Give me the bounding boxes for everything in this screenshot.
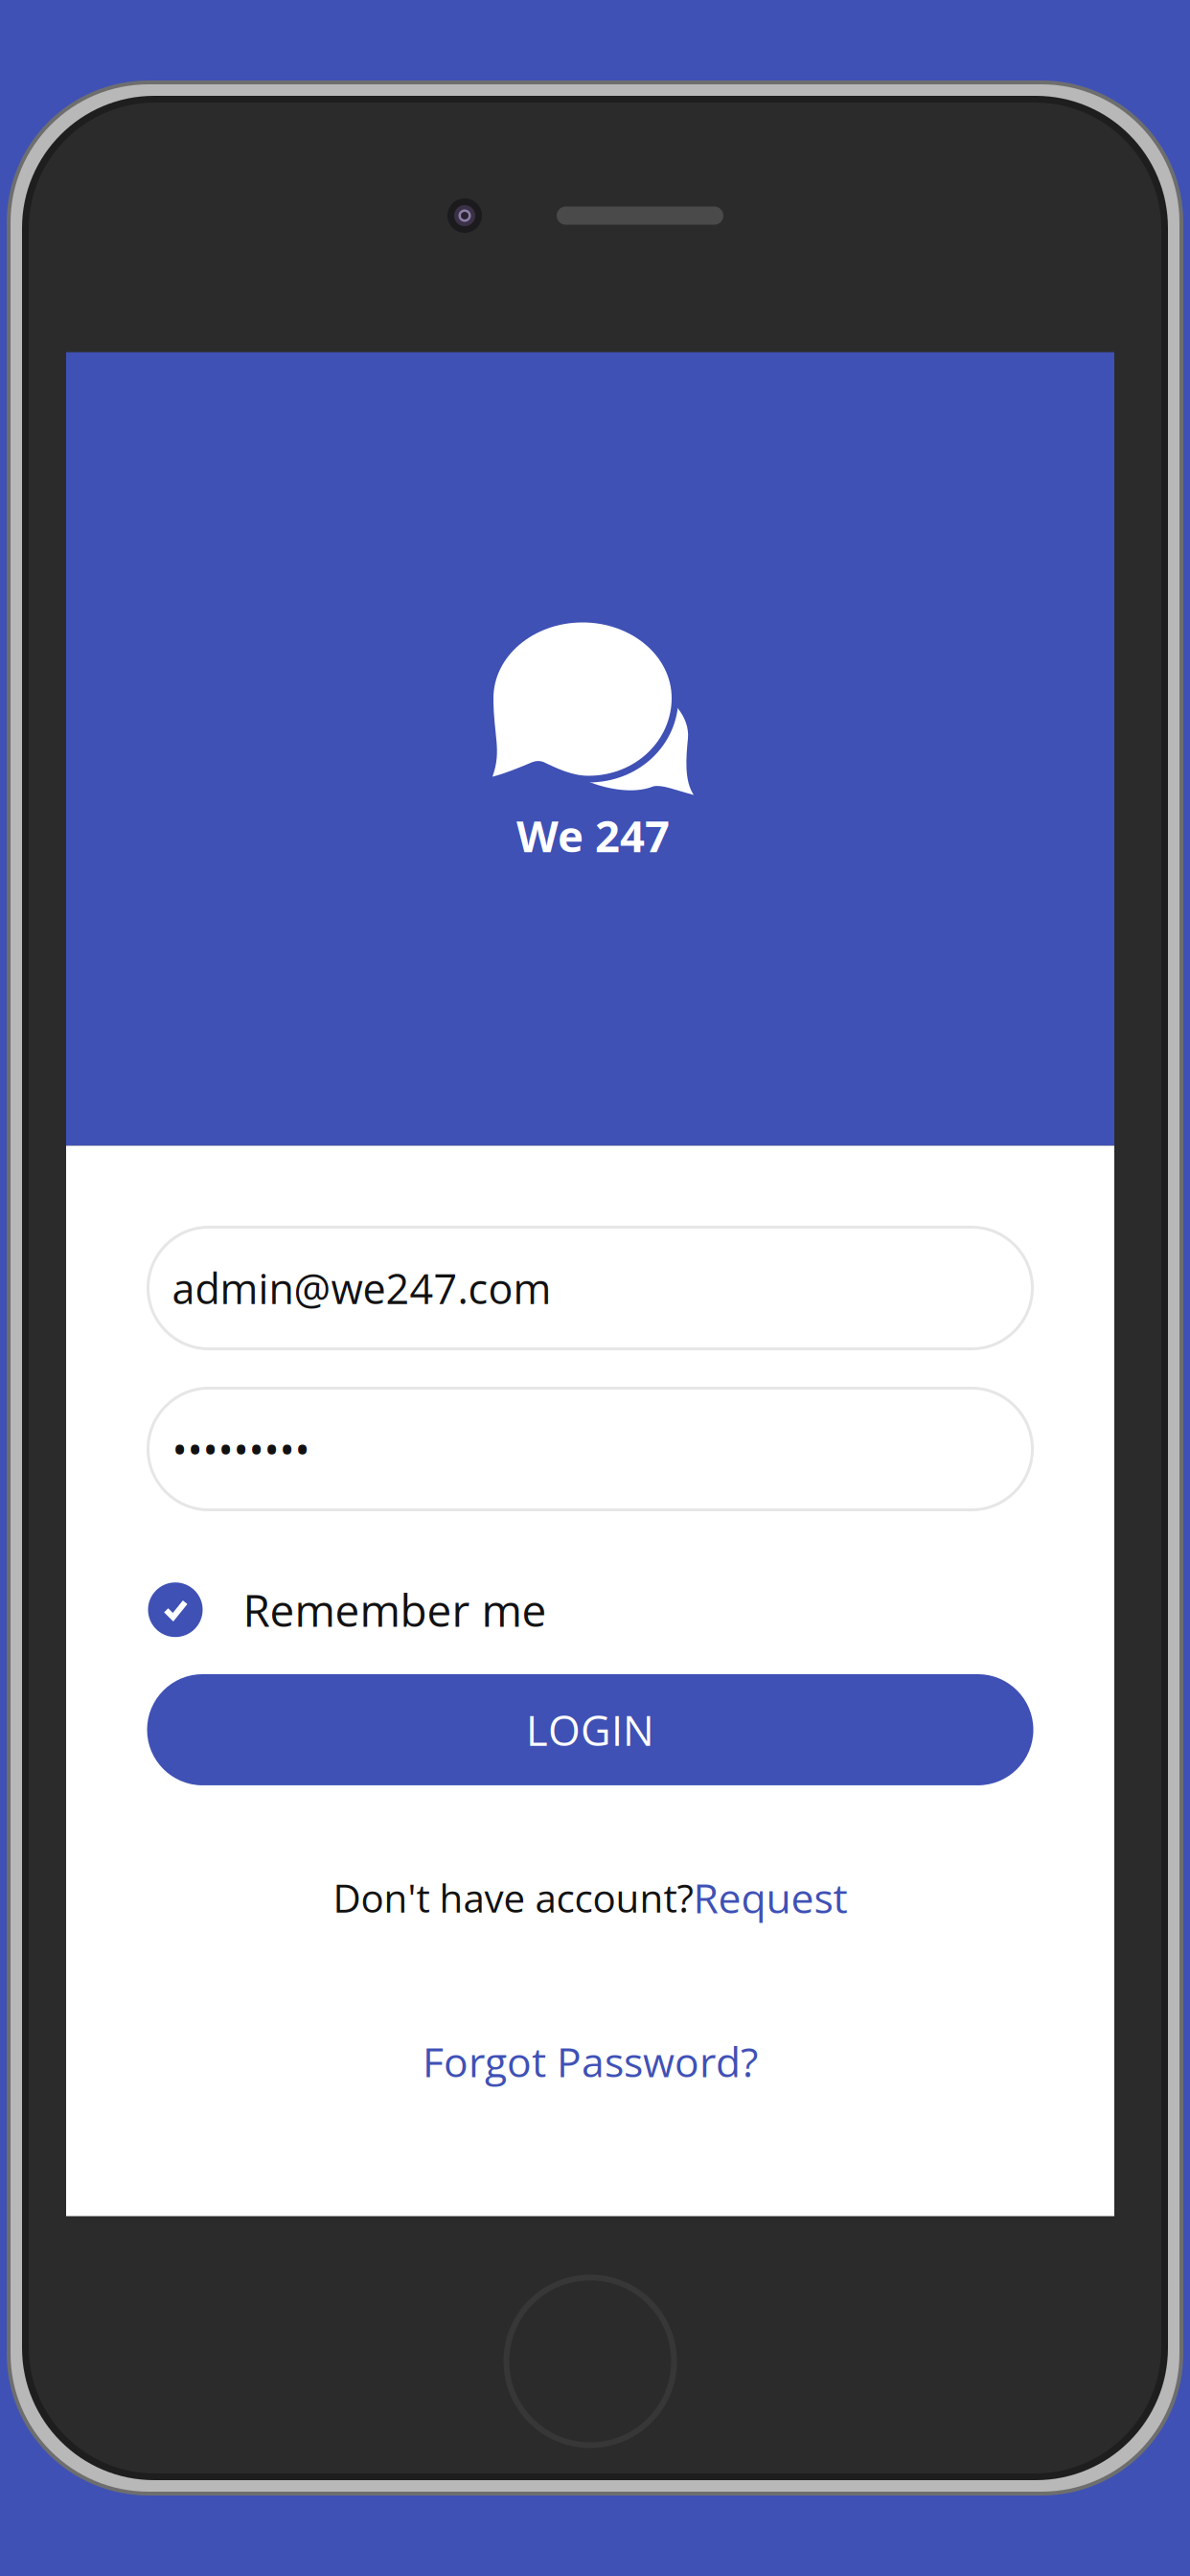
button[interactable]: Request — [693, 1870, 847, 1925]
staticText: LOGIN — [526, 1702, 654, 1758]
button[interactable]: Remember me — [148, 1580, 1032, 1640]
button[interactable]: ••••••••• — [148, 1388, 1032, 1510]
button[interactable]: LOGIN — [147, 1674, 1033, 1785]
staticText: We 247 — [516, 806, 670, 864]
staticText: ••••••••• — [172, 1421, 310, 1477]
staticText: Remember me — [243, 1580, 547, 1640]
button[interactable]: Forgot Password? — [423, 2034, 758, 2089]
staticText: Forgot Password? — [423, 2034, 758, 2089]
button[interactable]: admin@we247.com — [148, 1227, 1032, 1349]
staticText: Request — [693, 1870, 847, 1925]
staticText: admin@we247.com — [172, 1260, 551, 1316]
staticText: Don't have account? — [333, 1871, 693, 1924]
